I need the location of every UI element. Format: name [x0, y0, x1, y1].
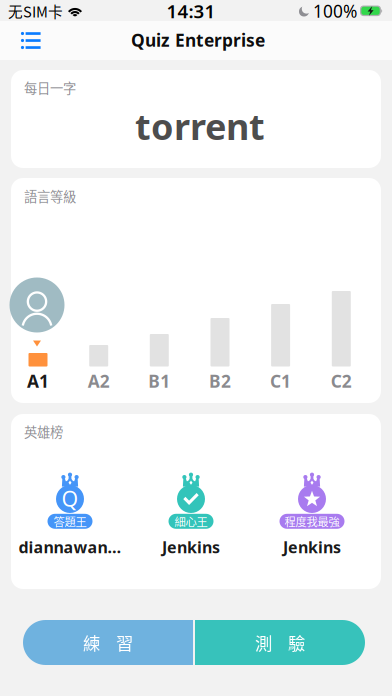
staticText: 程度我最強 [284, 513, 339, 529]
staticText: 答題王 [53, 513, 86, 529]
staticText: Quiz Enterprise [131, 28, 265, 51]
button[interactable]: 練 習 [23, 620, 193, 665]
button[interactable]: 測 驗 [195, 620, 365, 665]
staticText: 測 驗 [255, 630, 305, 655]
staticText: 100% [313, 0, 357, 22]
button[interactable]: 程度我最強 [253, 459, 371, 549]
button[interactable]: Menu [0, 21, 53, 60]
staticText: 14:31 [166, 0, 215, 23]
staticText: 語言等級 [24, 186, 76, 206]
staticText: Jenkins [162, 536, 220, 558]
staticText: 細心王 [174, 513, 207, 529]
staticText: diannawan… [18, 536, 121, 558]
staticText: 英雄榜 [24, 422, 63, 441]
staticText: B2 [209, 369, 231, 392]
staticText: torrent [135, 102, 265, 150]
button[interactable]: 細心王 [132, 459, 250, 549]
staticText: 无SIM卡 [8, 0, 63, 22]
staticText: C2 [331, 369, 352, 392]
staticText: C1 [270, 369, 291, 392]
staticText: 練 習 [83, 630, 133, 655]
staticText: Jenkins [283, 536, 341, 558]
staticText: B1 [148, 369, 170, 392]
staticText: A1 [27, 369, 49, 392]
staticText: A2 [88, 369, 110, 392]
button[interactable]: Q [11, 459, 129, 549]
staticText: 每日一字 [24, 78, 76, 97]
staticText: Q [61, 484, 78, 513]
